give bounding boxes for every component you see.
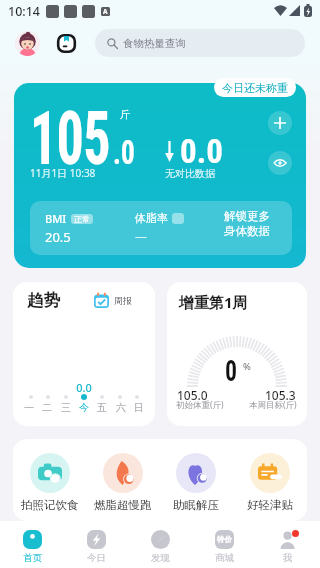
staticText: — (135, 228, 148, 244)
button[interactable]: Profile (15, 31, 40, 56)
staticText: 日 (134, 401, 144, 414)
staticText: 105.0 (177, 387, 208, 403)
staticText: % (243, 360, 251, 373)
staticText: BMI (45, 211, 67, 226)
staticText: 拍照记饮食 (21, 498, 79, 512)
button[interactable]: 首页 (0, 521, 64, 568)
staticText: 斤 (120, 108, 130, 121)
button[interactable]: 趋势 (13, 282, 155, 426)
button[interactable]: 今日还未称重 (214, 78, 296, 97)
staticText: 食物热量查询 (123, 37, 186, 50)
staticText: 助眠解压 (173, 498, 219, 512)
staticText: 今 (79, 401, 89, 414)
staticText: 发现 (151, 552, 170, 564)
staticText: 商城 (215, 552, 234, 564)
staticText: 我 (283, 552, 293, 564)
staticText: 首页 (23, 552, 42, 564)
button[interactable]: 发现 (128, 521, 192, 568)
staticText: 今日 (87, 552, 106, 564)
staticText: A (103, 7, 108, 16)
button[interactable]: Show details (268, 151, 292, 175)
staticText: 二 (42, 401, 52, 414)
button[interactable] (14, 83, 306, 268)
staticText: .0 (113, 132, 135, 172)
staticText: 身体数据 (224, 224, 270, 238)
staticText: 五 (97, 401, 107, 414)
button[interactable]: 拍照记饮食 (13, 439, 86, 521)
button[interactable]: 助眠解压 (159, 439, 233, 521)
staticText: 六 (116, 401, 126, 414)
button[interactable]: 燃脂超慢跑 (86, 439, 159, 521)
staticText: 三 (61, 401, 71, 414)
button[interactable]: 食物热量查询 (95, 29, 305, 57)
staticText: 无对比数据 (165, 167, 215, 180)
staticText: 105.3 (265, 387, 296, 403)
staticText: 好轻津贴 (247, 498, 293, 512)
button[interactable]: BMI (30, 201, 292, 255)
button[interactable]: Device (57, 34, 76, 53)
staticText: 趋势 (27, 290, 60, 311)
button[interactable]: 增重第1周 (167, 282, 307, 426)
staticText: 一 (24, 401, 34, 414)
button[interactable]: 特价 (192, 521, 256, 568)
staticText: 周报 (114, 295, 132, 306)
staticText: 11月1日 10:38 (30, 166, 96, 180)
staticText: 正常 (74, 214, 90, 224)
button[interactable]: 周报 (93, 292, 132, 309)
staticText: 10:14 (8, 3, 41, 20)
button[interactable]: 今日 (64, 521, 128, 568)
staticText: 特价 (217, 535, 232, 544)
staticText: 本周目标(斤) (249, 399, 297, 411)
button[interactable]: 好轻津贴 (233, 439, 307, 521)
staticText: 0.0 (180, 132, 223, 171)
staticText: 0 (225, 354, 237, 388)
staticText: 今日还未称重 (222, 81, 288, 95)
button[interactable]: 我 (256, 521, 320, 568)
staticText: 燃脂超慢跑 (94, 498, 152, 512)
staticText: 20.5 (45, 228, 71, 246)
staticText: 初始体重(斤) (176, 399, 224, 411)
staticText: 增重第1周 (179, 292, 248, 312)
staticText: 105 (30, 95, 110, 182)
staticText: 体脂率 (135, 211, 168, 225)
staticText: 0.0 (13, 380, 155, 395)
button[interactable]: Add weight (268, 111, 292, 135)
staticText: 解锁更多 (224, 209, 270, 223)
